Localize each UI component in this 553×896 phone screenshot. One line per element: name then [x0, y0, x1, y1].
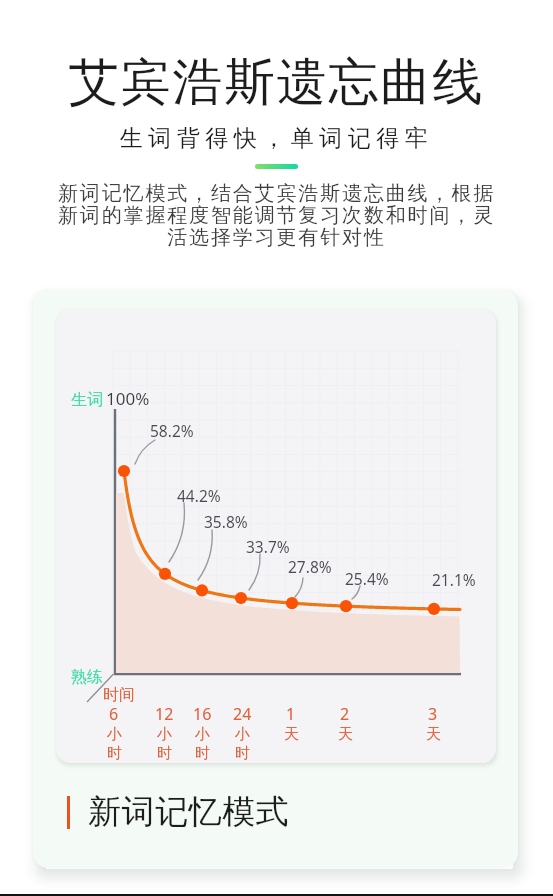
staticText: 天 [284, 725, 299, 744]
staticText: 12 [155, 703, 174, 725]
staticText: 25.4% [345, 568, 389, 589]
staticText: 2 [340, 703, 350, 725]
staticText: 艾宾浩斯遗忘曲线 [0, 51, 553, 114]
staticText: 熟练 [71, 667, 103, 687]
staticText: 24 [233, 703, 252, 725]
staticText: 时 [195, 744, 210, 763]
staticText: 58.2% [150, 420, 194, 441]
staticText: 小 [195, 725, 210, 744]
staticText: 44.2% [177, 485, 221, 506]
staticText: 时 [235, 744, 250, 763]
staticText: 新词记忆模式 [88, 791, 289, 833]
staticText: 时 [157, 744, 172, 763]
staticText: 35.8% [204, 511, 248, 532]
staticText: 6 [109, 703, 119, 725]
button[interactable]: 新词记忆模式 [67, 791, 289, 833]
staticText: 27.8% [288, 556, 332, 577]
staticText: 33.7% [246, 536, 290, 557]
staticText: 天 [338, 725, 353, 744]
staticText: 时间 [103, 685, 135, 705]
staticText: 生词背得快，单词记得牢 [0, 124, 553, 153]
staticText: 21.1% [432, 569, 476, 590]
staticText: 小 [157, 725, 172, 744]
staticText: 时 [107, 744, 122, 763]
staticText: 16 [193, 703, 212, 725]
staticText: 小 [107, 725, 122, 744]
staticText: 生词 [71, 390, 103, 410]
staticText: 小 [235, 725, 250, 744]
staticText: 3 [428, 703, 438, 725]
staticText: 天 [426, 725, 441, 744]
staticText: 100% [106, 387, 150, 410]
staticText: 1 [286, 703, 296, 725]
staticText: 新词记忆模式，结合艾宾浩斯遗忘曲线，根据新词的掌握程度智能调节复习次数和时间，灵… [52, 181, 501, 250]
